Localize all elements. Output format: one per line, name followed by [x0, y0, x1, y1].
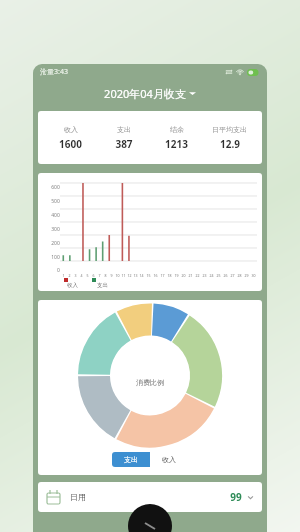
- staticText: 支出: [124, 455, 138, 464]
- staticText: 收入: [162, 455, 176, 464]
- staticText: 600: [51, 184, 60, 191]
- button[interactable]: 支出: [112, 452, 150, 467]
- staticText: 日平均支出: [212, 125, 247, 134]
- staticText: 8: [104, 273, 107, 278]
- staticText: 25: [216, 273, 221, 278]
- staticText: 收入: [64, 125, 78, 134]
- staticText: 19: [174, 273, 179, 278]
- staticText: 12: [127, 273, 132, 278]
- button[interactable]: 收入: [44, 125, 97, 151]
- staticText: 18: [167, 273, 172, 278]
- staticText: 20: [181, 273, 186, 278]
- button[interactable]: 收入: [150, 452, 188, 467]
- staticText: 日用: [70, 492, 86, 502]
- staticText: 23: [202, 273, 207, 278]
- staticText: 11: [121, 273, 126, 278]
- button[interactable]: 2020年04月收支: [33, 80, 267, 106]
- staticText: 收入: [67, 282, 78, 289]
- staticText: 100: [51, 254, 60, 261]
- staticText: 沧量3:43: [40, 67, 68, 77]
- staticText: 15: [146, 273, 151, 278]
- staticText: 200: [51, 240, 60, 247]
- staticText: 17: [160, 273, 165, 278]
- staticText: 26: [223, 273, 228, 278]
- staticText: 22: [195, 273, 200, 278]
- staticText: 5: [86, 273, 89, 278]
- staticText: 9: [110, 273, 113, 278]
- staticText: 400: [51, 212, 60, 219]
- staticText: 1213: [165, 137, 188, 151]
- button[interactable]: 日用: [38, 482, 262, 512]
- staticText: 1600: [59, 137, 82, 151]
- staticText: 3: [74, 273, 77, 278]
- staticText: 21: [188, 273, 193, 278]
- staticText: 支出: [117, 125, 131, 134]
- staticText: 387: [115, 137, 133, 151]
- staticText: 结余: [170, 125, 184, 134]
- staticText: 2: [68, 273, 71, 278]
- staticText: 12.9: [220, 137, 240, 151]
- button[interactable]: Add record: [128, 504, 172, 532]
- staticText: 28: [237, 273, 242, 278]
- staticText: 消费比例: [136, 378, 164, 387]
- staticText: 99: [230, 490, 242, 504]
- staticText: 30: [251, 273, 256, 278]
- staticText: 300: [51, 226, 60, 233]
- staticText: 29: [244, 273, 249, 278]
- button[interactable]: 结余: [150, 125, 203, 151]
- staticText: 13: [133, 273, 138, 278]
- staticText: 4: [80, 273, 83, 278]
- staticText: 16: [153, 273, 158, 278]
- button[interactable]: 日平均支出: [203, 125, 256, 151]
- staticText: 支出: [97, 282, 108, 289]
- button[interactable]: 支出: [97, 125, 150, 151]
- staticText: 2020年04月收支: [104, 86, 186, 101]
- staticText: 6: [92, 273, 95, 278]
- staticText: 0: [57, 267, 60, 274]
- staticText: 1: [62, 273, 65, 278]
- staticText: 14: [139, 273, 144, 278]
- staticText: 24: [209, 273, 214, 278]
- staticText: 27: [230, 273, 235, 278]
- staticText: 500: [51, 198, 60, 205]
- staticText: 7: [98, 273, 101, 278]
- staticText: 10: [115, 273, 120, 278]
